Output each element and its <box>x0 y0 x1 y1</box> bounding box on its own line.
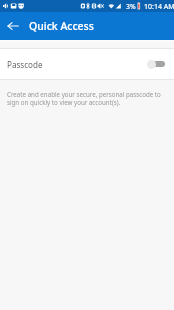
staticText: Quick Access <box>29 19 94 33</box>
button[interactable]: Passcode switch, off <box>147 58 165 70</box>
staticText: Passcode <box>7 59 43 70</box>
staticText: 10:14 AM <box>144 2 174 12</box>
staticText: Create and enable your secure, personal … <box>7 90 162 106</box>
button[interactable]: Back <box>0 12 26 40</box>
staticText: 3% <box>126 2 136 11</box>
button[interactable]: Passcode <box>0 49 174 79</box>
